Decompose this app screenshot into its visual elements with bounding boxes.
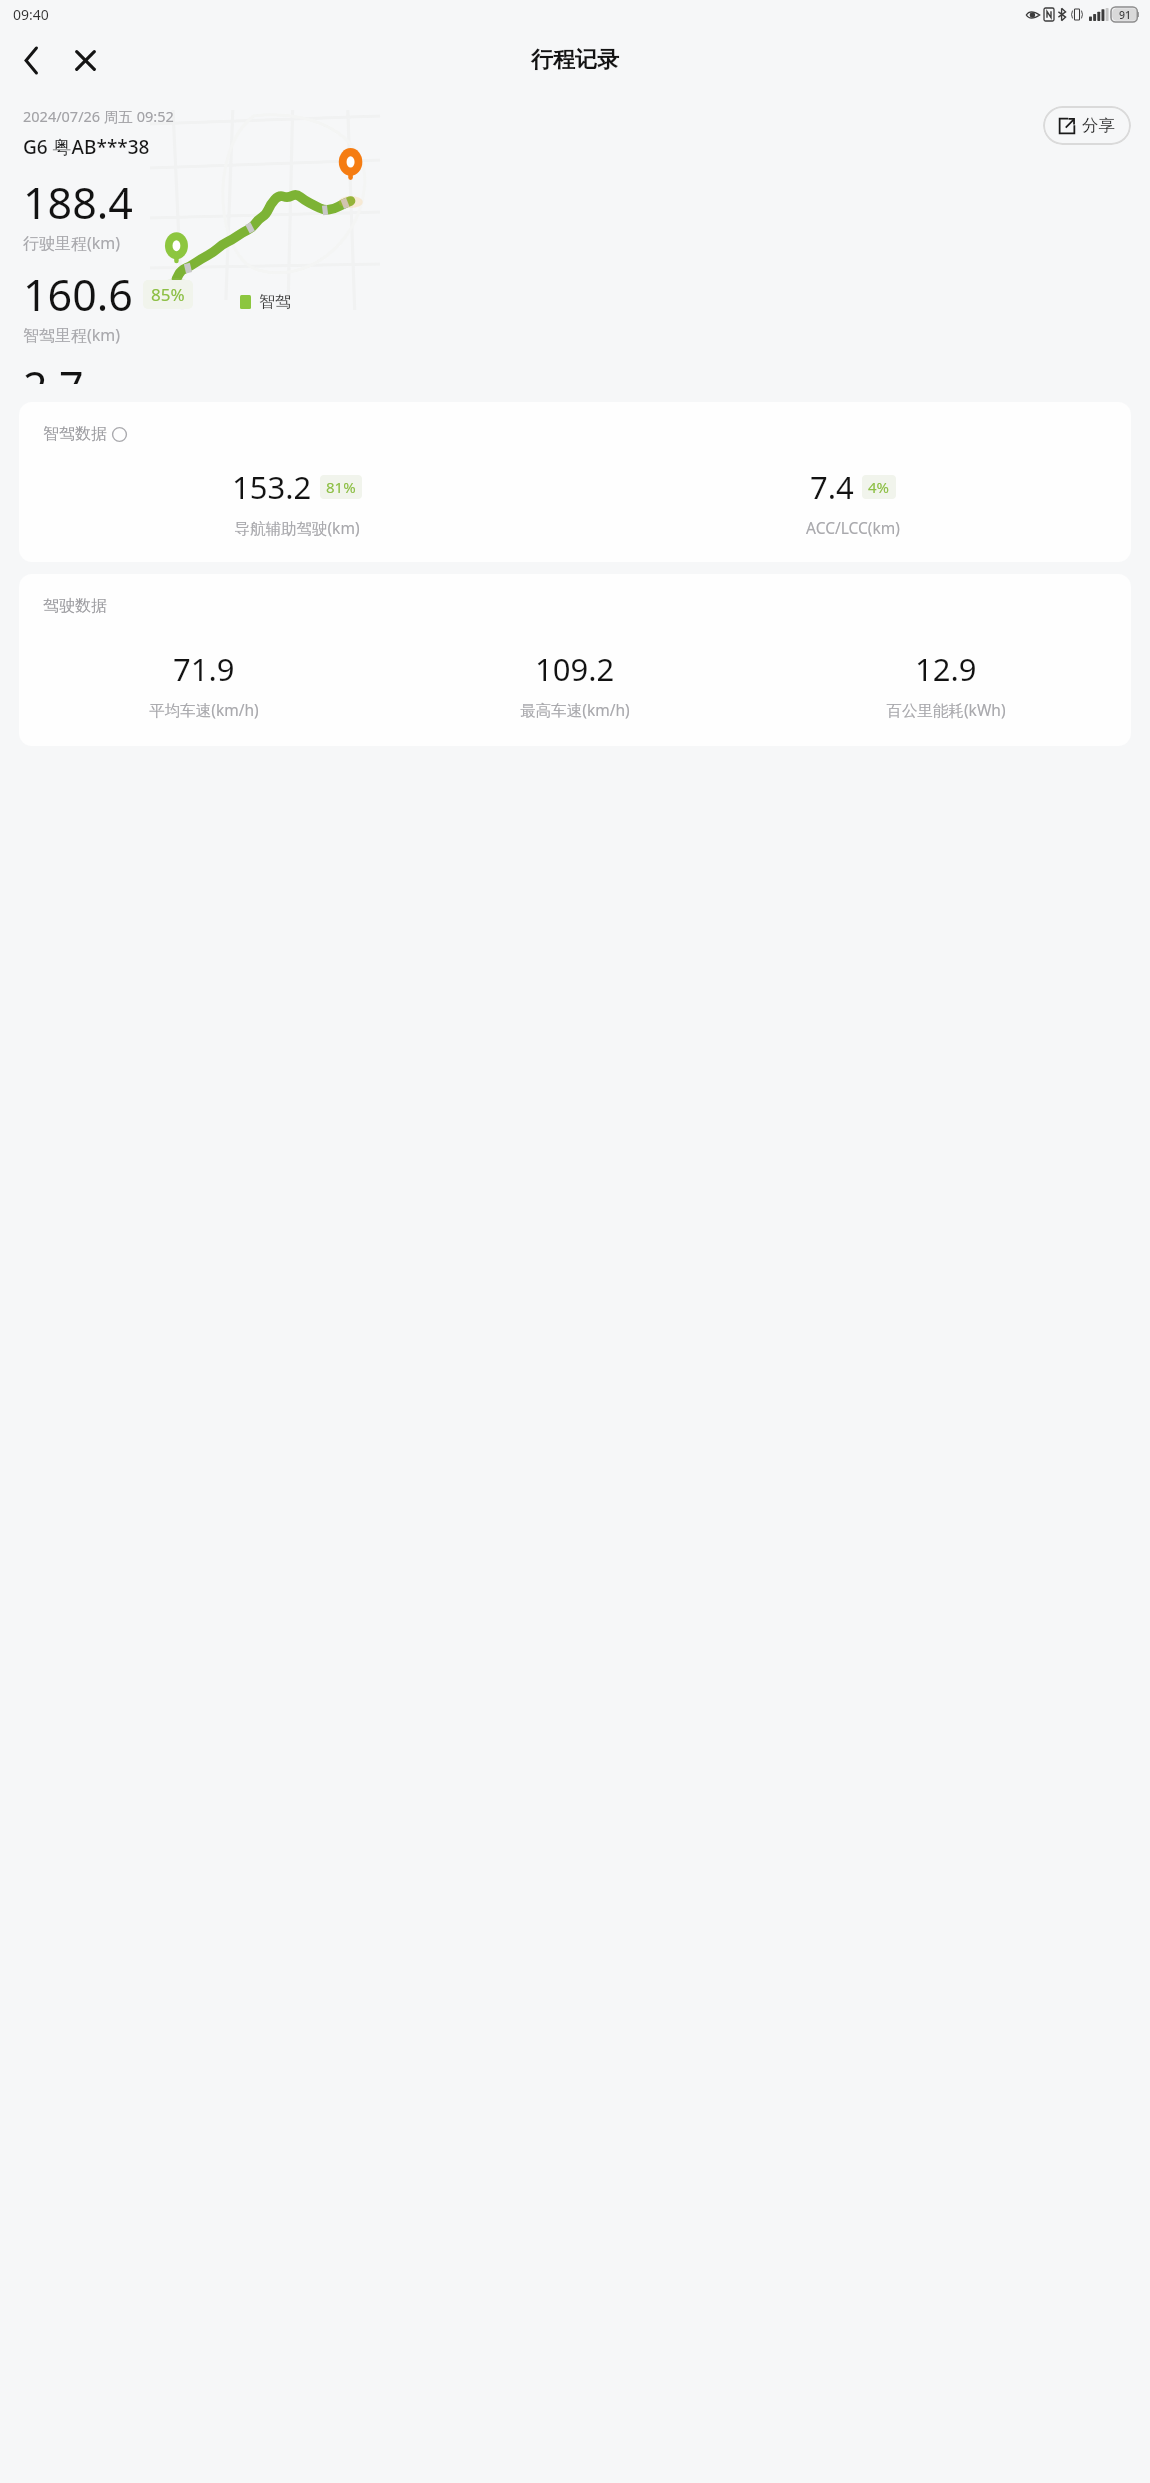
staticText: 驾驶数据 xyxy=(43,596,107,616)
button[interactable]: Back xyxy=(7,36,55,84)
staticText: 09:40 xyxy=(13,5,49,24)
staticText: 分享 xyxy=(1082,115,1115,136)
staticText: 7.4 xyxy=(810,466,854,508)
staticText: 行程记录 xyxy=(531,46,619,74)
staticText: ACC/LCC(km) xyxy=(806,517,900,538)
button[interactable]: 分享 xyxy=(1043,106,1131,145)
staticText: G6 粤AB***38 xyxy=(23,134,150,160)
staticText: 4% xyxy=(868,477,890,497)
staticText: 160.6 xyxy=(23,265,133,324)
staticText: 智驾里程(km) xyxy=(23,324,121,346)
button[interactable]: 智驾数据 xyxy=(43,424,127,444)
staticText: 智驾 xyxy=(259,292,291,312)
staticText: 153.2 xyxy=(232,466,312,508)
staticText: 百公里能耗(kWh) xyxy=(886,699,1006,720)
staticText: 188.4 xyxy=(23,173,133,232)
staticText: 91 xyxy=(1119,8,1132,22)
button[interactable]: Close xyxy=(61,36,109,84)
staticText: 最高车速(km/h) xyxy=(520,699,630,720)
staticText: 81% xyxy=(326,477,356,497)
other: Help xyxy=(112,427,127,442)
staticText: 12.9 xyxy=(915,648,977,690)
staticText: 平均车速(km/h) xyxy=(149,699,259,720)
staticText: 智驾数据 xyxy=(43,424,107,444)
staticText: 行驶里程(km) xyxy=(23,232,121,254)
staticText: 85% xyxy=(151,283,185,306)
staticText: 71.9 xyxy=(173,648,235,690)
staticText: 109.2 xyxy=(535,648,615,690)
button[interactable]: 智驾数据 xyxy=(19,402,1131,562)
staticText: 2.7 xyxy=(23,357,84,384)
staticText: 2024/07/26 周五 09:52 xyxy=(23,106,174,126)
button[interactable]: 驾驶数据 xyxy=(19,574,1131,746)
staticText: 导航辅助驾驶(km) xyxy=(234,517,360,538)
